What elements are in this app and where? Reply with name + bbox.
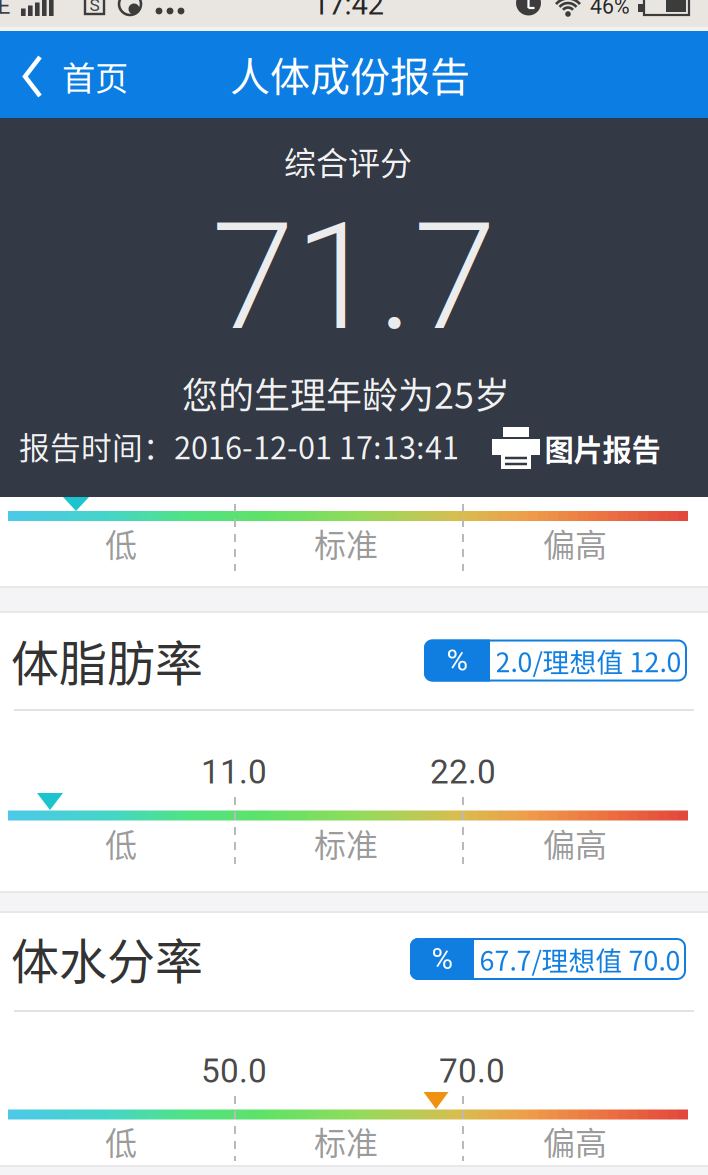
staticText: 11.0 <box>201 752 267 792</box>
staticText: 人体成份报告 <box>230 45 470 103</box>
staticText: 22.0 <box>430 752 496 792</box>
staticText: 46% <box>590 0 630 19</box>
staticText: 标准 <box>314 520 378 566</box>
staticText: 综合评分 <box>284 138 412 184</box>
staticText: 您的生理年龄为25岁 <box>182 367 510 419</box>
staticText: 低 <box>105 820 137 866</box>
staticText: 体水分率 <box>11 923 203 993</box>
staticText: 偏高 <box>543 820 607 866</box>
staticText: 50.0 <box>201 1051 267 1091</box>
staticText: 71.7 <box>211 189 496 364</box>
staticText: 低 <box>105 520 137 566</box>
staticText: 标准 <box>314 1118 378 1164</box>
staticText: 低 <box>105 1118 137 1164</box>
staticText: 67.7/理想值 70.0 <box>479 940 680 978</box>
staticText: 17:42 <box>312 0 383 22</box>
staticText: E <box>0 0 10 19</box>
staticText: 首页 <box>62 52 128 100</box>
staticText: 70.0 <box>439 1051 505 1091</box>
staticText: 体脂肪率 <box>11 625 203 695</box>
staticText: 偏高 <box>543 520 607 566</box>
staticText: 标准 <box>314 820 378 866</box>
staticText: 2.0/理想值 12.0 <box>495 641 681 680</box>
staticText: 报告时间：2016-12-01 17:13:41 <box>19 424 459 468</box>
button[interactable]: 首页 <box>23 57 133 96</box>
staticText: % <box>431 942 452 976</box>
staticText: % <box>446 643 467 678</box>
button[interactable]: 图片报告 <box>492 427 660 469</box>
staticText: S <box>89 0 99 15</box>
staticText: 偏高 <box>543 1118 607 1164</box>
staticText: 图片报告 <box>544 427 660 469</box>
